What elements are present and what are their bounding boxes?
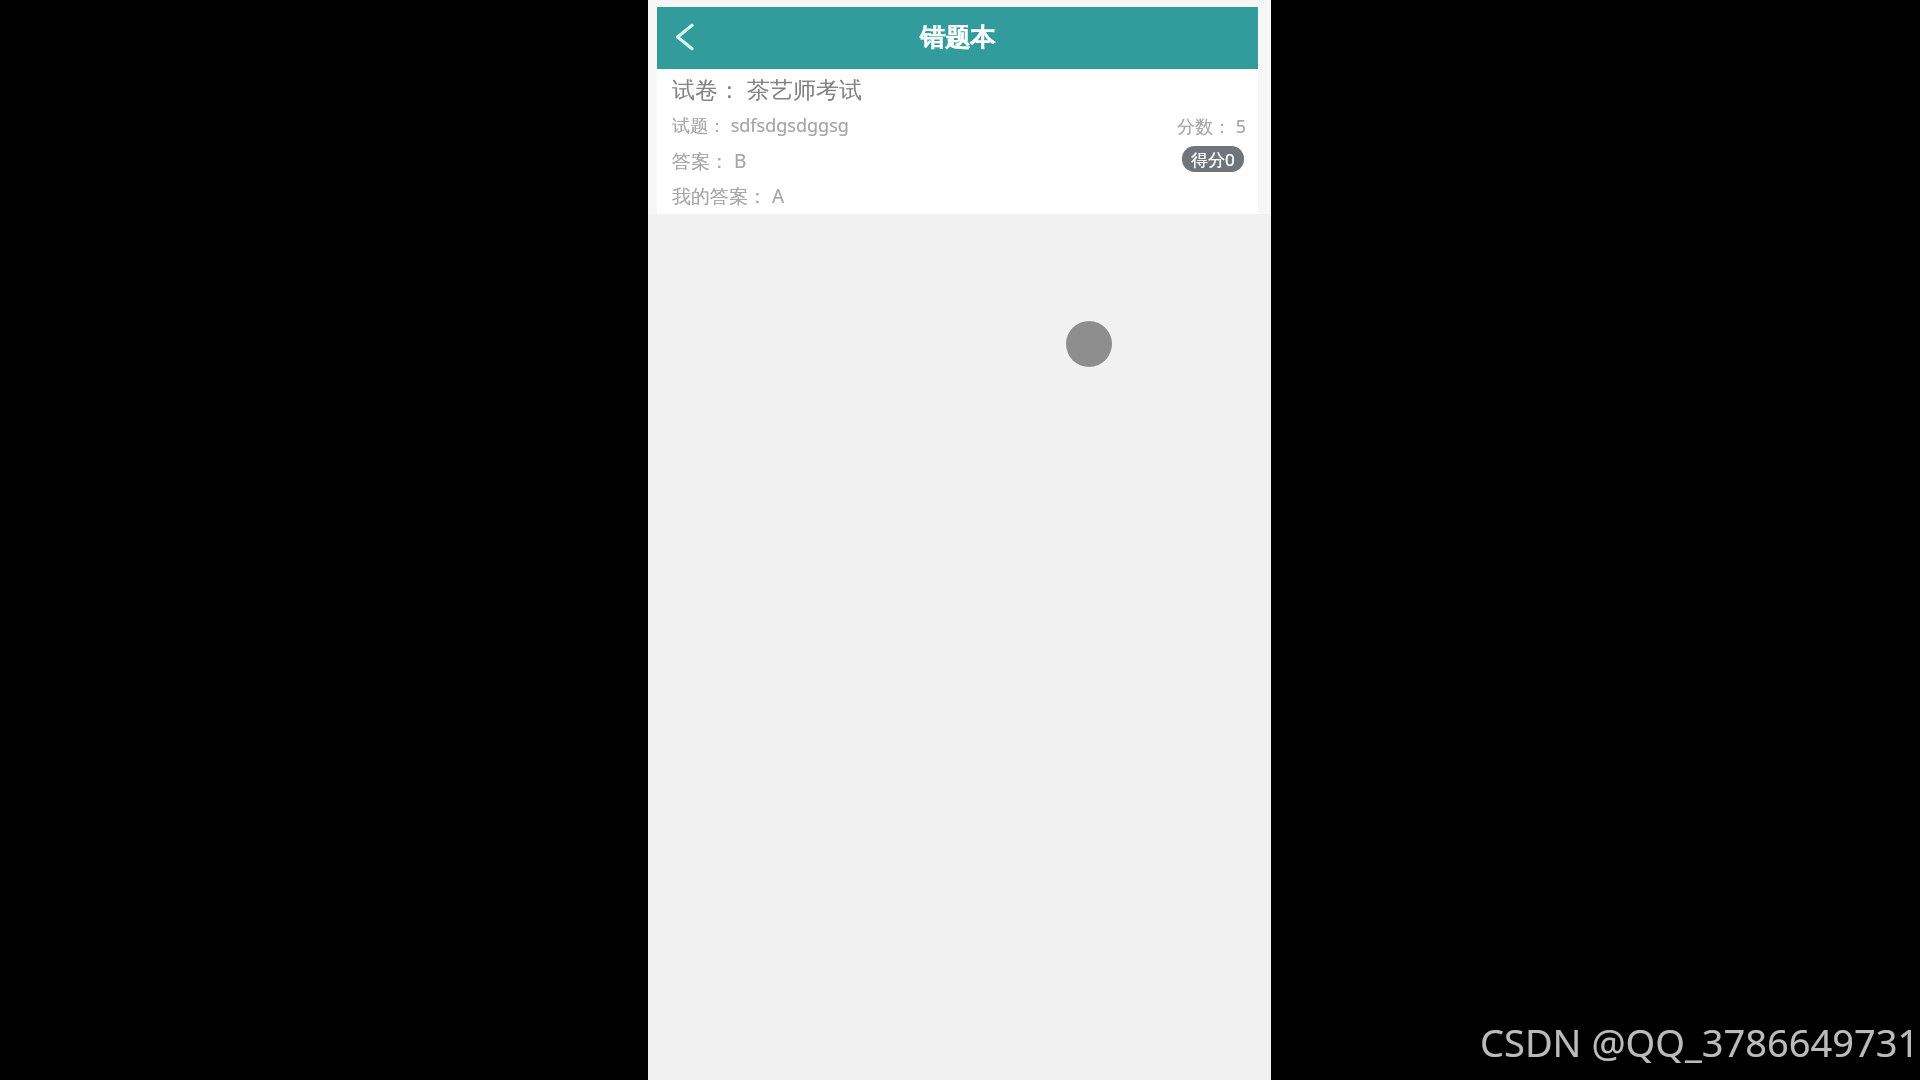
staticText: 答案： B (672, 148, 747, 174)
staticText: 得分0 (1191, 148, 1235, 171)
button[interactable]: 试卷： 茶艺师考试 (657, 69, 1258, 214)
staticText: 错题本 (920, 22, 995, 53)
button[interactable]: 得分0 (1182, 146, 1244, 172)
button[interactable]: Back (663, 15, 707, 59)
staticText: 试卷： 茶艺师考试 (672, 73, 862, 104)
button[interactable]: Loading (1066, 321, 1112, 367)
staticText: 分数： 5 (1177, 114, 1246, 139)
staticText: CSDN @QQ_3786649731 (1480, 1016, 1920, 1068)
staticText: 我的答案： A (672, 183, 785, 209)
staticText: 试题： sdfsdgsdggsg (672, 113, 849, 138)
